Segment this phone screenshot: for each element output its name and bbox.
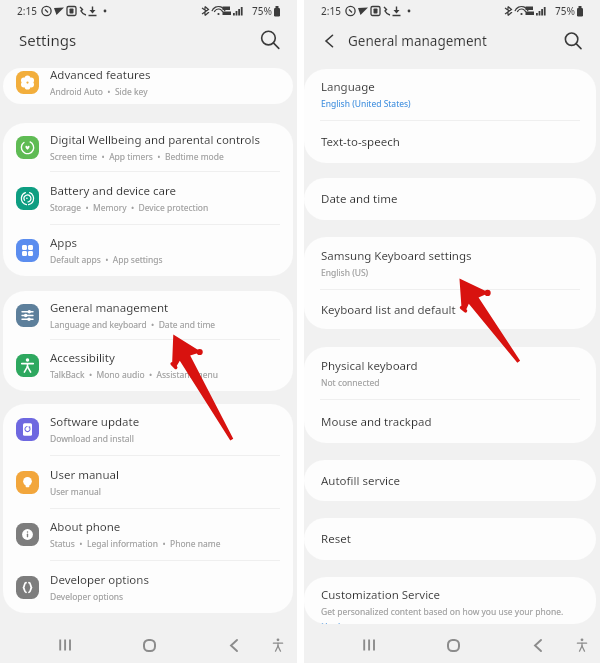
staticText: 75% [555, 4, 575, 18]
staticText: English (US) [321, 267, 369, 279]
staticText: Apps [50, 235, 78, 251]
staticText: Customization Service [321, 587, 441, 603]
button[interactable]: Developer options [3, 561, 293, 613]
staticText: Text-to-speech [321, 134, 400, 150]
staticText: Settings [19, 30, 77, 50]
staticText: TalkBack • Mono audio • Assistant menu [50, 369, 219, 381]
button[interactable]: User manual [3, 456, 293, 508]
button[interactable]: Back [321, 32, 339, 50]
staticText: Download and install [50, 433, 134, 445]
button[interactable]: Mouse and trackpad [304, 400, 596, 443]
button[interactable]: Customization Service [304, 577, 596, 624]
staticText: 75% [252, 4, 272, 18]
staticText: Samsung Keyboard settings [321, 248, 472, 264]
staticText: Default apps • App settings [50, 254, 163, 266]
staticText: Not in use [321, 621, 362, 624]
button[interactable]: Home [134, 630, 164, 660]
button[interactable]: Samsung Keyboard settings [304, 237, 596, 289]
button[interactable]: About phone [3, 509, 293, 560]
staticText: Digital Wellbeing and parental controls [50, 132, 261, 148]
staticText: User manual [50, 486, 101, 498]
staticText: Reset [321, 531, 351, 547]
button[interactable]: General management [3, 291, 293, 339]
staticText: Mouse and trackpad [321, 414, 432, 430]
staticText: Advanced features [50, 68, 151, 83]
button[interactable]: Accessibility [567, 630, 597, 660]
staticText: Physical keyboard [321, 358, 418, 374]
button[interactable]: Recent apps [50, 630, 80, 660]
staticText: Developer options [50, 572, 149, 588]
button[interactable]: Battery and device care [3, 172, 293, 224]
button[interactable]: Language [304, 69, 596, 120]
staticText: General management [50, 300, 169, 316]
staticText: Software update [50, 414, 140, 430]
staticText: Autofill service [321, 473, 400, 489]
button[interactable]: Date and time [304, 178, 596, 220]
staticText: 2:15 [17, 4, 37, 18]
staticText: Date and time [321, 191, 398, 207]
staticText: English (United States) [321, 98, 411, 110]
staticText: User manual [50, 467, 119, 483]
staticText: Language [321, 79, 375, 95]
staticText: Keyboard list and default [321, 302, 456, 318]
staticText: Not connected [321, 377, 380, 389]
staticText: General management [348, 32, 487, 50]
button[interactable]: Text-to-speech [304, 121, 596, 163]
staticText: Accessibility [50, 350, 115, 366]
button[interactable]: Accessibility [3, 340, 293, 391]
staticText: Screen time • App timers • Bedtime mode [50, 151, 224, 163]
button[interactable]: Home [438, 630, 468, 660]
staticText: 2:15 [321, 4, 341, 18]
button[interactable]: Reset [304, 518, 596, 560]
button[interactable]: Software update [3, 404, 293, 455]
staticText: Status • Legal information • Phone name [50, 538, 221, 550]
button[interactable]: Apps [3, 225, 293, 276]
staticText: About phone [50, 519, 121, 535]
button[interactable]: Search [563, 31, 583, 51]
button[interactable]: Recent apps [354, 630, 384, 660]
staticText: Get personalized content based on how yo… [321, 606, 564, 618]
button[interactable]: Autofill service [304, 460, 596, 501]
staticText: Android Auto • Side key [50, 86, 148, 98]
staticText: Battery and device care [50, 183, 177, 199]
button[interactable]: Back [219, 630, 249, 660]
button[interactable]: Keyboard list and default [304, 290, 596, 329]
button[interactable]: Search [259, 29, 281, 51]
button[interactable]: Accessibility [263, 630, 293, 660]
staticText: Developer options [50, 591, 124, 603]
button[interactable]: Digital Wellbeing and parental controls [3, 123, 293, 171]
staticText: Language and keyboard • Date and time [50, 319, 216, 331]
staticText: Storage • Memory • Device protection [50, 202, 209, 214]
button[interactable]: Physical keyboard [304, 347, 596, 399]
button[interactable]: Back [523, 630, 553, 660]
